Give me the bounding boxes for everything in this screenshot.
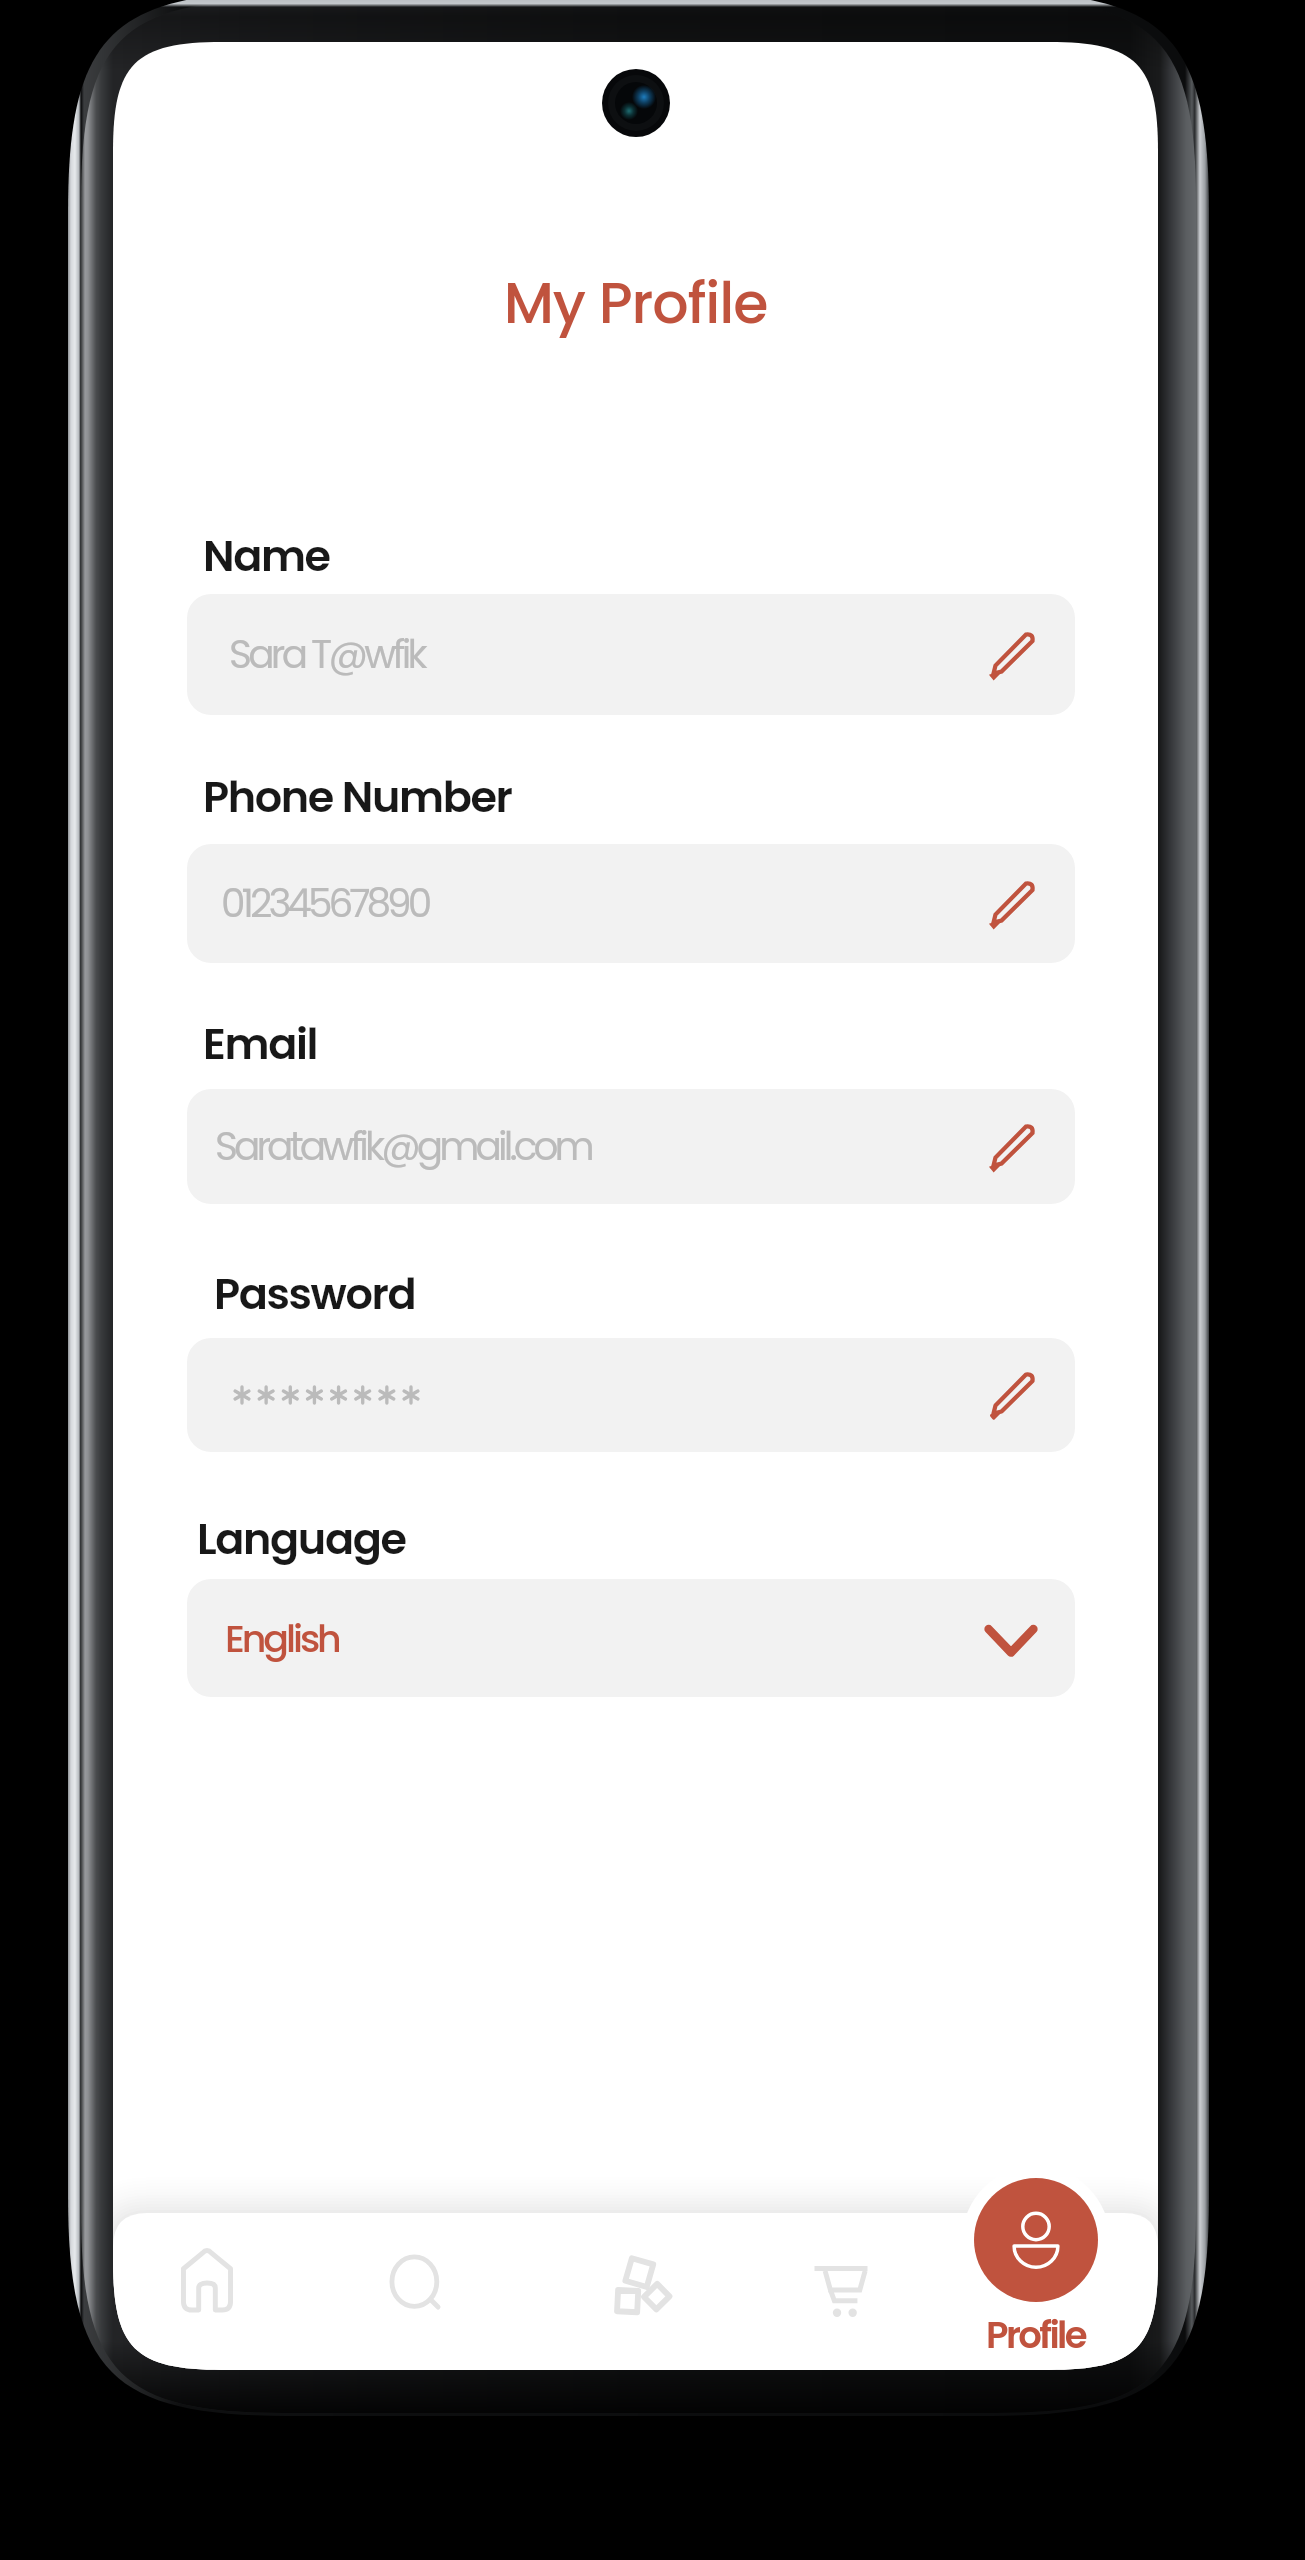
staticText: Language	[197, 1509, 406, 1569]
button[interactable]	[187, 1338, 1075, 1452]
button[interactable]: Cart	[746, 2213, 936, 2370]
button[interactable]: 01234567890	[187, 844, 1075, 963]
button[interactable]: Saratawfik@gmail.com	[187, 1089, 1075, 1204]
button[interactable]: Home	[113, 2213, 302, 2370]
staticText: Profile	[986, 2309, 1086, 2361]
staticText: Sara T@wfik	[229, 627, 987, 682]
staticText: Phone Number	[203, 767, 512, 827]
staticText: Name	[203, 526, 330, 586]
staticText: My Profile	[113, 263, 1158, 343]
staticText: English	[225, 1612, 985, 1665]
button[interactable]: Sara T@wfik	[187, 594, 1075, 715]
staticText: Password	[214, 1264, 416, 1324]
button[interactable]: Search	[320, 2213, 510, 2370]
button[interactable]: Profile	[936, 2164, 1136, 2354]
staticText: Email	[203, 1014, 318, 1074]
button[interactable]: Categories	[548, 2213, 738, 2370]
button[interactable]: English	[187, 1579, 1075, 1697]
staticText: 01234567890	[221, 876, 987, 931]
staticText: Saratawfik@gmail.com	[215, 1119, 987, 1174]
